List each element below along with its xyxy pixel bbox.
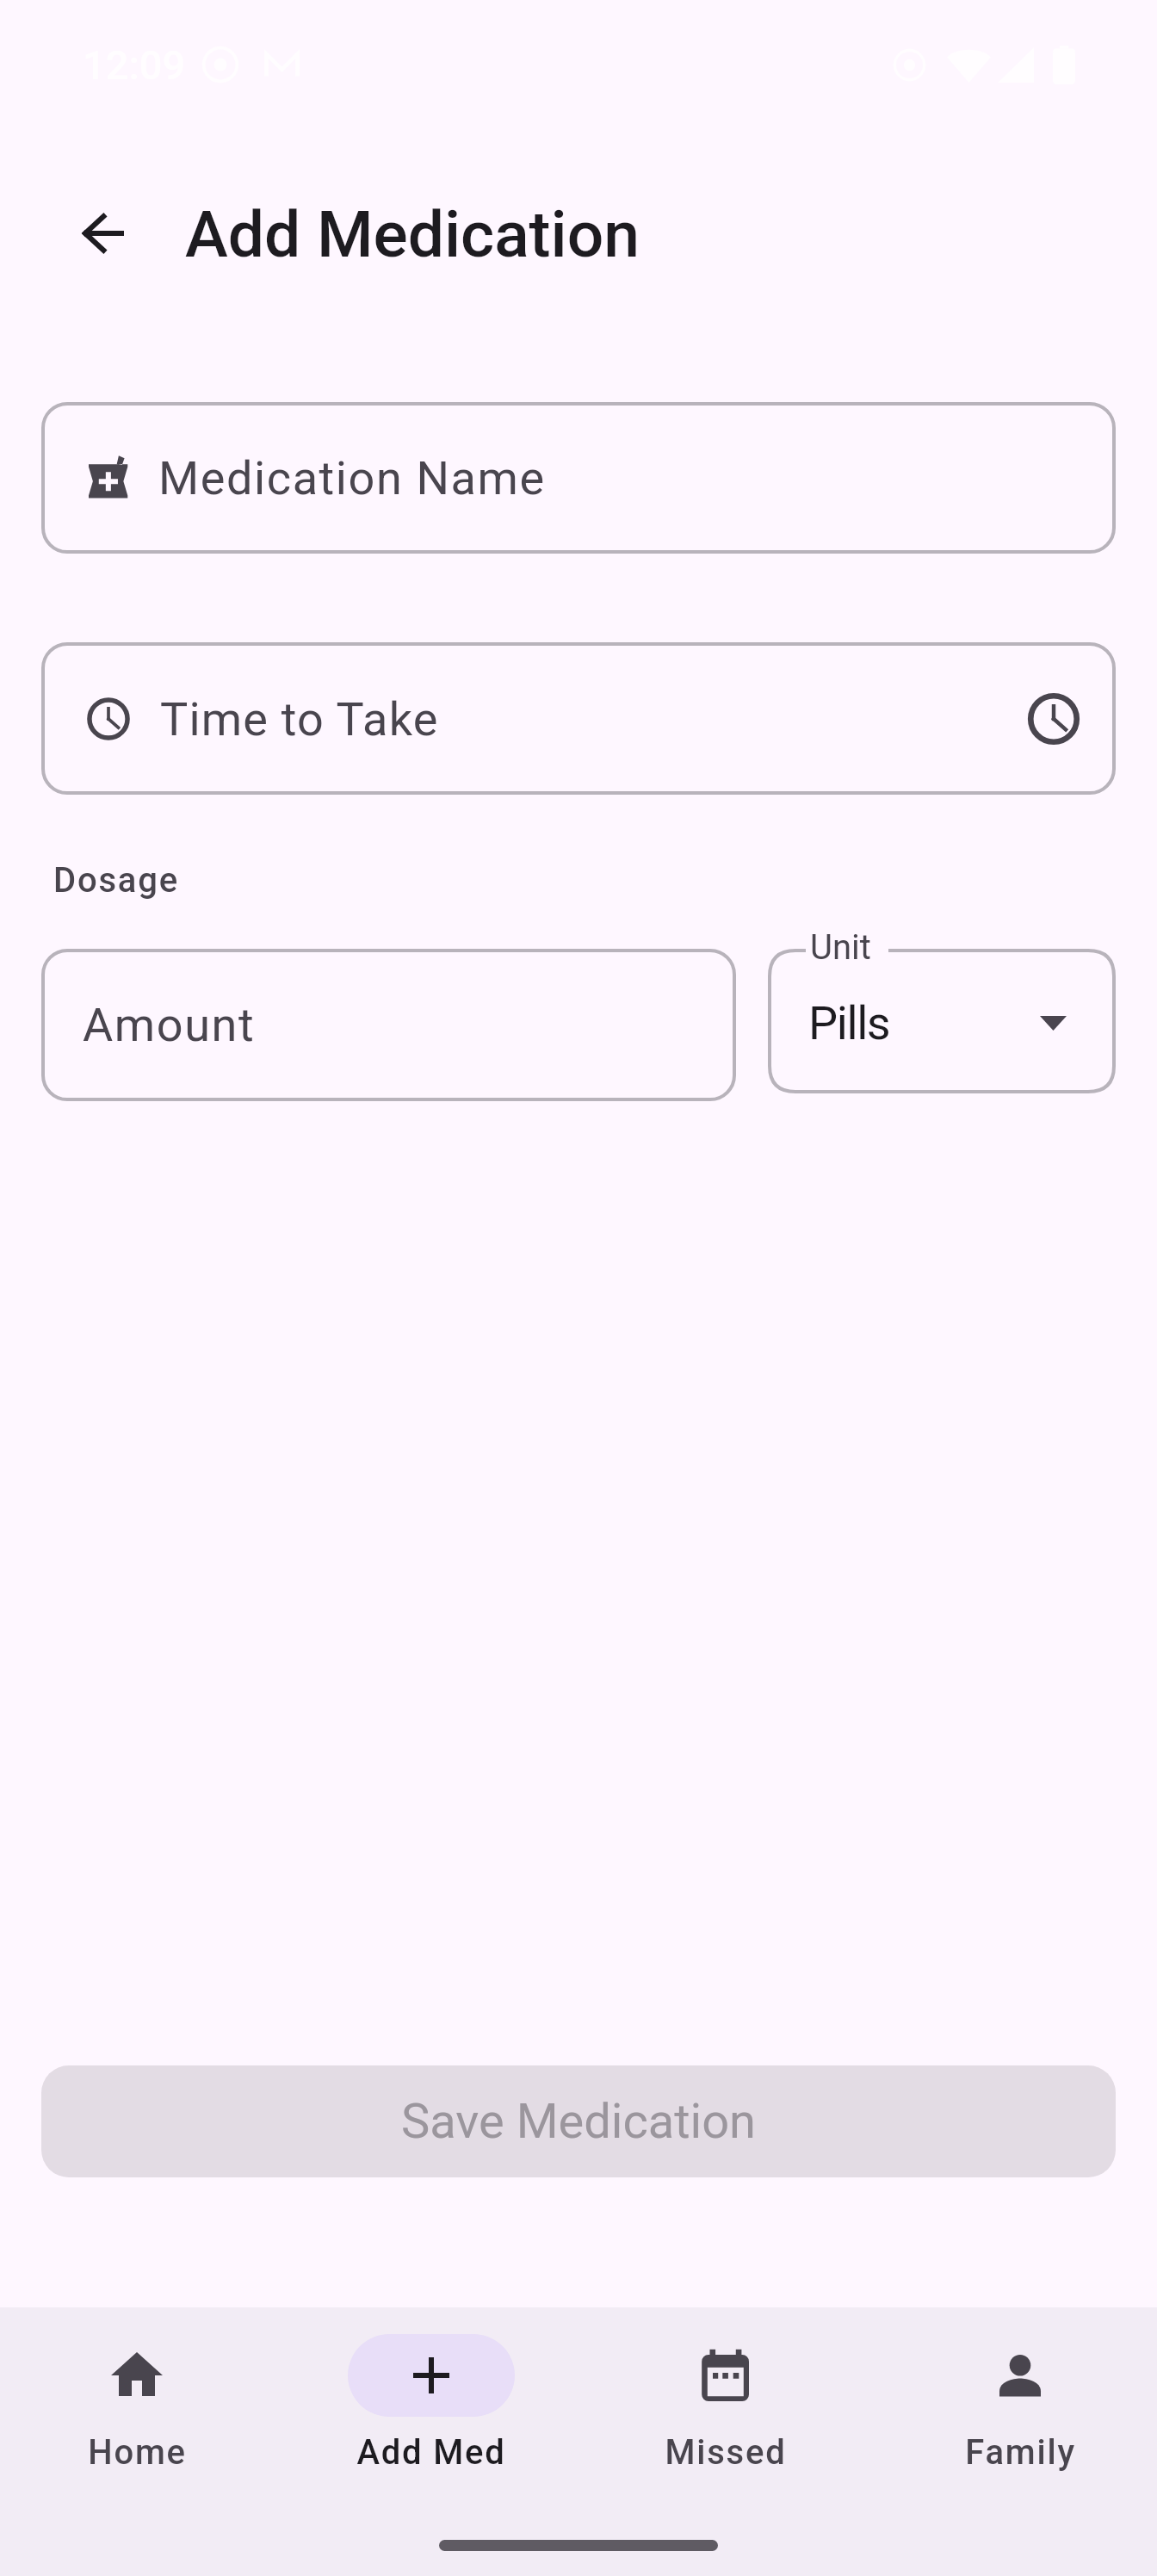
- staticText: Family: [965, 2432, 1076, 2473]
- button[interactable]: Add Med: [294, 2334, 568, 2473]
- staticText: Amount: [83, 998, 256, 1052]
- button[interactable]: Family: [883, 2334, 1157, 2473]
- button[interactable]: Missed: [589, 2334, 863, 2473]
- staticText: Pills: [808, 996, 890, 1050]
- staticText: Missed: [665, 2432, 787, 2473]
- button[interactable]: Amount: [41, 949, 736, 1101]
- staticText: Add Med: [356, 2432, 506, 2473]
- button[interactable]: Medication Name: [41, 402, 1116, 554]
- button[interactable]: Home: [0, 2334, 274, 2473]
- staticText: Time to Take: [160, 692, 439, 746]
- button[interactable]: Save Medication: [41, 2065, 1116, 2177]
- staticText: Home: [88, 2432, 187, 2473]
- button[interactable]: Time to Take: [41, 642, 1116, 795]
- staticText: Save Medication: [401, 2093, 757, 2150]
- staticText: Add Medication: [185, 196, 640, 272]
- staticText: Unit: [810, 927, 871, 968]
- staticText: Dosage: [53, 860, 179, 901]
- staticText: Medication Name: [158, 451, 546, 505]
- button[interactable]: Back: [55, 185, 152, 282]
- button[interactable]: Unit: [768, 935, 1116, 1107]
- button[interactable]: Pick time: [1024, 690, 1083, 748]
